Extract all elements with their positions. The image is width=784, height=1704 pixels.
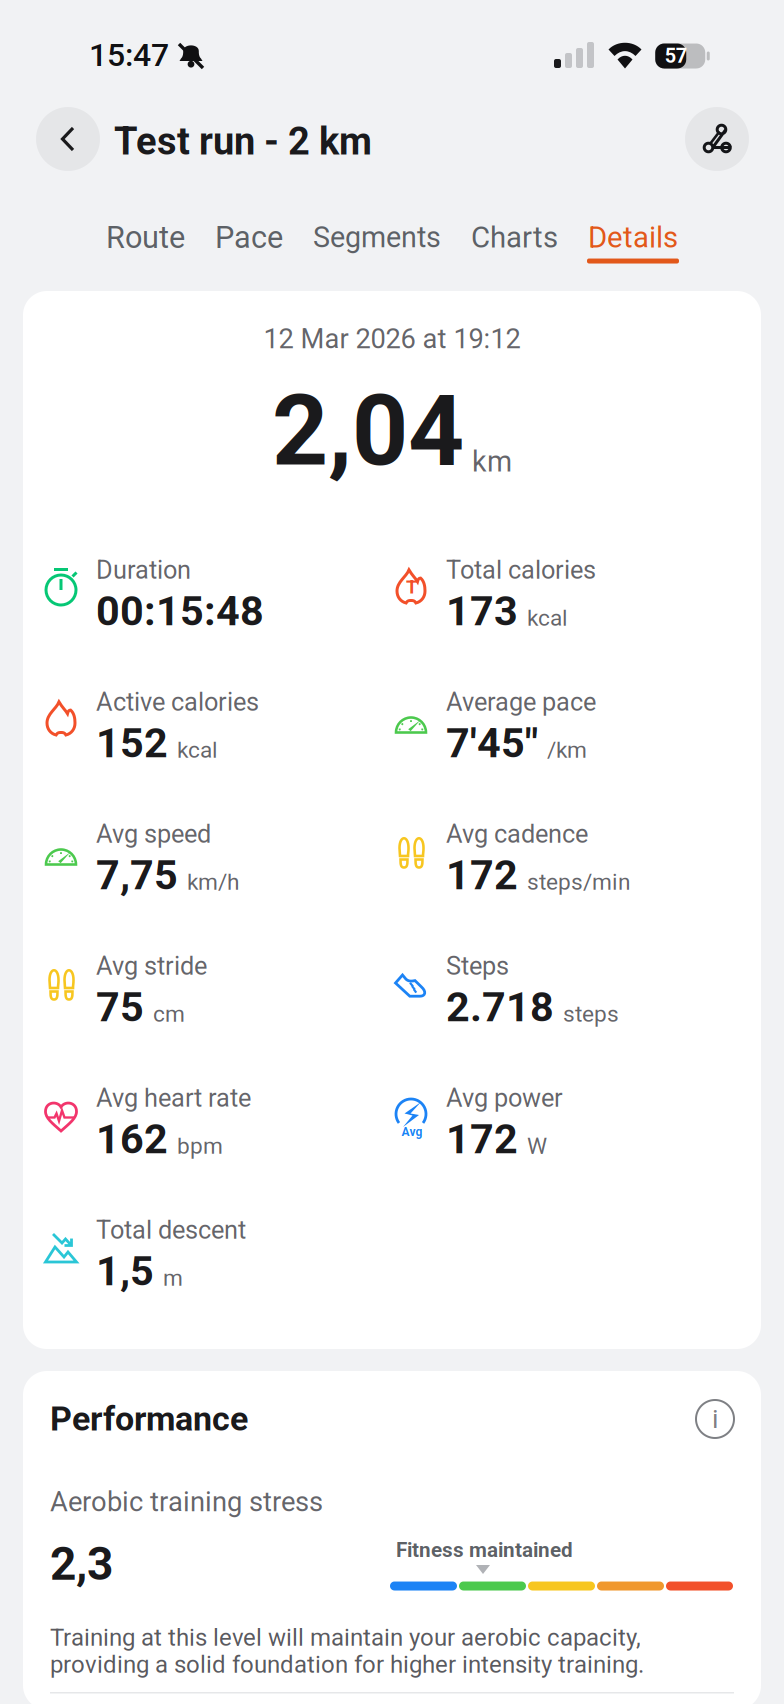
staticText: Avg	[401, 1125, 422, 1139]
button[interactable]: Share	[685, 107, 749, 171]
staticText: i	[712, 1403, 718, 1435]
staticText: Avg power	[446, 1083, 563, 1113]
staticText: W	[527, 1133, 547, 1159]
staticText: Details	[588, 220, 678, 255]
staticText: steps/min	[527, 869, 631, 895]
staticText: /km	[547, 737, 587, 763]
staticText: 15:47	[89, 36, 169, 74]
button[interactable]: Back	[36, 107, 100, 171]
staticText: 162	[96, 1115, 168, 1163]
button[interactable]: Info	[696, 1398, 734, 1440]
staticText: 00:15:48	[96, 587, 264, 635]
staticText: 2.718	[446, 983, 554, 1031]
staticText: Route	[106, 219, 185, 255]
staticText: 12 Mar 2026 at 19:12	[263, 323, 520, 355]
staticText: Avg speed	[96, 819, 211, 849]
staticText: Segments	[313, 221, 441, 254]
staticText: Average pace	[446, 687, 596, 717]
staticText: 172	[446, 1115, 518, 1163]
staticText: Steps	[446, 951, 509, 981]
staticText: Total calories	[446, 555, 596, 585]
staticText: 7,75	[96, 851, 178, 899]
staticText: steps	[563, 1001, 619, 1027]
staticText: Avg cadence	[446, 819, 588, 849]
staticText: 57	[665, 44, 687, 68]
staticText: m	[163, 1265, 183, 1291]
staticText: km/h	[187, 869, 239, 895]
staticText: 1,5	[96, 1247, 154, 1295]
staticText: 152	[96, 719, 168, 767]
staticText: providing a solid foundation for higher …	[50, 1650, 644, 1678]
button[interactable]: Charts	[470, 185, 559, 263]
staticText: cm	[153, 1001, 185, 1027]
staticText: kcal	[527, 605, 568, 631]
button[interactable]: Route	[105, 185, 186, 263]
staticText: 75	[96, 983, 144, 1031]
staticText: 172	[446, 851, 518, 899]
staticText: Pace	[215, 219, 283, 255]
staticText: Total descent	[96, 1215, 246, 1245]
staticText: 7'45"	[446, 719, 538, 767]
staticText: 2,3	[50, 1537, 113, 1591]
button[interactable]: Segments	[312, 185, 442, 263]
staticText: Charts	[471, 220, 558, 255]
staticText: kcal	[177, 737, 218, 763]
staticText: T	[406, 576, 418, 598]
staticText: km	[472, 445, 512, 478]
staticText: 173	[446, 587, 518, 635]
staticText: Training at this level will maintain you…	[50, 1623, 641, 1651]
staticText: Fitness maintained	[396, 1538, 573, 1562]
staticText: Avg heart rate	[96, 1083, 251, 1113]
button[interactable]: Details	[587, 185, 679, 263]
button[interactable]: Pace	[214, 185, 284, 263]
staticText: bpm	[177, 1133, 223, 1159]
staticText: Test run - 2 km	[114, 119, 372, 164]
staticText: Active calories	[96, 687, 259, 717]
staticText: Aerobic training stress	[50, 1486, 323, 1518]
staticText: 2,04	[272, 374, 464, 488]
staticText: Duration	[96, 555, 191, 585]
staticText: Avg stride	[96, 951, 207, 981]
staticText: Performance	[50, 1399, 248, 1439]
